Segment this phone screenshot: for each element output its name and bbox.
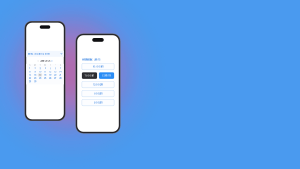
staticText: 15 [29,74,31,76]
staticText: 3 [39,67,40,70]
button[interactable]: 11:00am [82,72,97,79]
button[interactable]: 5 [47,67,53,70]
staticText: 11:00am [84,74,94,77]
button[interactable]: 23 [32,77,37,80]
staticText: 20 [54,74,56,76]
staticText: S [29,64,30,66]
staticText: 18 [44,74,46,76]
staticText: 9 [34,70,35,73]
button[interactable]: 28 [58,77,63,80]
staticText: 14 [59,70,61,73]
staticText: 29 [29,80,31,83]
staticText: 7 [60,67,61,70]
button[interactable]: 10 [37,70,42,73]
button[interactable]: 15 [27,73,32,77]
button[interactable]: 3 [37,67,42,70]
button[interactable]: 6 [53,67,58,70]
staticText: 25 [44,77,46,79]
staticText: 24 [39,77,41,79]
staticText: 28 [59,77,61,79]
staticText: 2 [34,67,35,70]
staticText: Select a Date & Time [28,52,50,55]
staticText: 16 [34,74,36,76]
staticText: T [50,64,51,66]
button[interactable]: 26 [47,77,53,80]
button[interactable]: 1 [27,67,32,70]
button[interactable]: 2:00pm [82,99,114,106]
button[interactable]: 10:00am [82,63,114,70]
staticText: F [55,64,56,66]
staticText: June 2025 [40,59,50,62]
button[interactable]: 12 [47,70,53,73]
staticText: 2:00pm [93,101,102,104]
button[interactable]: 21 [58,73,63,77]
button[interactable]: 7 [58,67,63,70]
staticText: 11 [44,70,46,73]
button[interactable]: 1:00pm [82,90,114,97]
staticText: 13 [54,70,56,73]
staticText: 12:00pm [93,83,103,86]
button[interactable]: 19 [47,73,53,77]
button[interactable]: 11 [42,70,48,73]
staticText: 27 [54,77,56,79]
button[interactable]: 30 [32,80,37,83]
button[interactable]: 22 [27,77,32,80]
button[interactable]: 17 [37,73,42,77]
staticText: 30 [34,80,36,83]
staticText: 22 [29,77,31,79]
staticText: 5 [50,67,51,70]
button[interactable]: 18 [42,73,48,77]
staticText: 12 [49,70,51,73]
staticText: 1 [29,67,30,70]
staticText: 21 [59,74,61,76]
button[interactable]: 29 [27,80,32,83]
button[interactable]: 12:00pm [82,81,114,88]
button[interactable]: Select a Date & Time [26,51,64,57]
staticText: 26 [49,77,51,79]
button[interactable]: 2 [32,67,37,70]
staticText: Confirm [102,74,111,77]
button[interactable]: 8 [27,70,32,73]
button[interactable]: 13 [53,70,58,73]
button[interactable]: 9 [32,70,37,73]
button[interactable]: 16 [32,73,37,77]
button[interactable]: 25 [42,77,48,80]
button[interactable]: 4 [42,67,48,70]
button[interactable]: 24 [37,77,42,80]
button[interactable]: 20 [53,73,58,77]
staticText: 23 [34,77,36,79]
staticText: 10 [39,70,41,73]
button[interactable]: Confirm [99,72,114,79]
staticText: 10:00am [92,65,103,68]
staticText: 8 [29,70,30,73]
button[interactable]: 27 [53,77,58,80]
button[interactable]: 14 [58,70,63,73]
staticText: M [34,64,36,66]
staticText: 6 [55,67,56,70]
staticText: Wednesday, Jan 15 [82,58,100,61]
staticText: 17 [39,74,41,76]
staticText: 19 [49,74,51,76]
staticText: 4 [44,67,45,70]
staticText: 1:00pm [93,92,102,95]
